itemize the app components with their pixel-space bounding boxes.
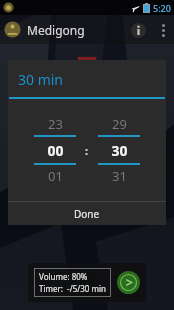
staticText: 31 (112, 167, 127, 185)
staticText: : (85, 143, 89, 158)
staticText: 23 (48, 115, 63, 133)
button[interactable]: 01 (31, 165, 79, 187)
staticText: 30 min (18, 70, 64, 89)
button[interactable]: 29 (95, 113, 143, 135)
button[interactable]: Info (124, 16, 152, 44)
staticText: Volume: 80% (39, 271, 88, 282)
button[interactable]: 23 (31, 113, 79, 135)
staticText: Medigong (27, 22, 85, 38)
button[interactable]: More options (152, 16, 174, 44)
staticText: 30 (111, 141, 128, 160)
staticText: 5:20 (153, 2, 171, 14)
button[interactable]: 00 (31, 137, 79, 163)
staticText: 01 (48, 167, 63, 185)
staticText: 29 (112, 115, 127, 133)
button[interactable]: Play (117, 271, 140, 294)
button[interactable]: Medigong (4, 21, 85, 38)
button[interactable]: Done (8, 202, 166, 225)
button[interactable]: 31 (95, 165, 143, 187)
button[interactable]: Volume: 80% (39, 271, 106, 294)
staticText: Done (74, 207, 100, 221)
button[interactable]: 30 (95, 137, 143, 163)
staticText: Timer: -/5/30 min (39, 283, 106, 294)
staticText: 00 (47, 141, 64, 160)
